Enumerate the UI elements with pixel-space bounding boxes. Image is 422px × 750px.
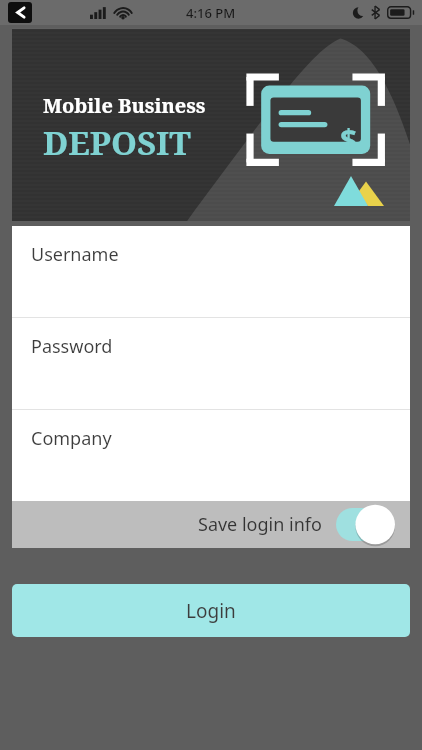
staticText: Mobile Business [43,92,206,119]
button[interactable]: Back [8,2,32,23]
staticText: Company [31,426,112,451]
staticText: Username [31,242,119,267]
staticText: Save login info [198,512,322,537]
staticText: $ [340,119,358,160]
staticText: Login [186,598,236,624]
button[interactable]: Password [12,318,410,409]
button[interactable]: Login [12,584,410,637]
staticText: Password [31,334,113,359]
button[interactable]: Username [12,226,410,317]
button[interactable]: Company [12,410,410,501]
staticText: DEPOSIT [43,120,191,165]
staticText: 4:16 PM [186,4,236,22]
button[interactable]: Save login info [12,501,410,548]
